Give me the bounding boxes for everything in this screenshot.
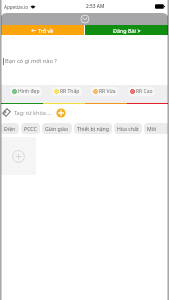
- button[interactable]: Thiết bị nặng: [77, 125, 109, 132]
- button[interactable]: Expand: [80, 14, 90, 24]
- staticText: Thiết bị nặng: [77, 125, 109, 132]
- button[interactable]: Giàn giáo: [45, 125, 69, 132]
- button[interactable]: Môi trường: [147, 125, 166, 132]
- staticText: Điện: [4, 125, 16, 132]
- button[interactable]: Trở về: [0, 25, 84, 35]
- button[interactable]: Add photo: [0, 137, 36, 175]
- staticText: RR Cao: [136, 88, 153, 95]
- staticText: Tag: từ khóa ...: [14, 109, 52, 116]
- staticText: Môi trường: [147, 125, 166, 132]
- staticText: 2:53 AM: [86, 3, 105, 10]
- staticText: RR Thấp: [60, 88, 80, 95]
- button[interactable]: Hóa chất: [117, 125, 139, 132]
- staticText: Đăng Bài: [113, 27, 136, 34]
- staticText: Hóa chất: [117, 125, 139, 132]
- button[interactable]: Hình đẹp: [12, 88, 40, 95]
- staticText: Hình đẹp: [18, 88, 40, 95]
- button[interactable]: RR Cao: [130, 88, 153, 95]
- button[interactable]: RR Vừa: [93, 88, 116, 95]
- staticText: PCCC: [24, 125, 37, 132]
- button[interactable]: PCCC: [24, 125, 37, 132]
- staticText: Trở về: [38, 27, 54, 34]
- button[interactable]: Add tag: [56, 108, 66, 118]
- staticText: Appetize.io: [4, 4, 28, 10]
- staticText: Bạn có gì mới nào ?: [5, 57, 57, 65]
- button[interactable]: Đăng Bài: [85, 25, 169, 35]
- button[interactable]: Điện: [4, 125, 16, 132]
- staticText: Giàn giáo: [45, 125, 69, 132]
- staticText: RR Vừa: [99, 88, 116, 95]
- button[interactable]: RR Thấp: [54, 88, 80, 95]
